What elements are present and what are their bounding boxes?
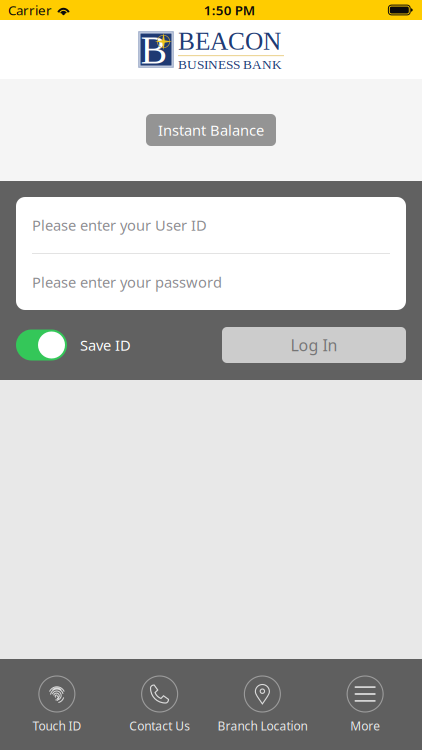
staticText: BEACON (178, 27, 281, 55)
staticText: Instant Balance (158, 120, 264, 140)
staticText: Please enter your User ID (32, 215, 207, 235)
button[interactable]: Log In (222, 327, 406, 363)
staticText: Carrier (8, 1, 52, 19)
button[interactable]: Touch ID (5, 659, 108, 750)
button[interactable]: More (314, 659, 417, 750)
staticText: Touch ID (32, 718, 81, 734)
staticText: Please enter your password (32, 272, 222, 292)
button[interactable]: Branch Location (211, 659, 314, 750)
staticText: More (350, 718, 380, 734)
staticText: Branch Location (217, 718, 307, 734)
staticText: Contact Us (129, 718, 190, 734)
button[interactable]: Instant Balance (146, 114, 276, 146)
staticText: Log In (290, 334, 337, 356)
staticText: BUSINESS BANK (178, 57, 282, 72)
button[interactable]: Contact Us (108, 659, 211, 750)
staticText: 1:50 PM (204, 1, 255, 19)
button[interactable]: Save ID (16, 329, 131, 360)
staticText: Save ID (80, 335, 131, 355)
staticText: B (140, 28, 167, 72)
